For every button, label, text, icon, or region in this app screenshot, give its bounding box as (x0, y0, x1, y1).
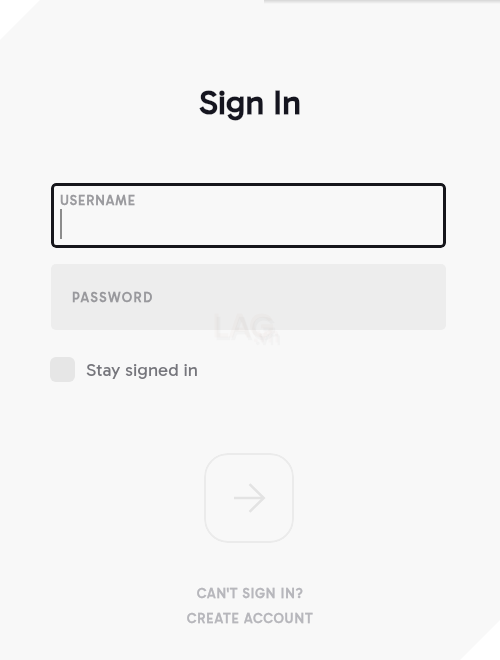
button[interactable]: Stay signed in (50, 353, 198, 386)
staticText: PASSWORD (72, 290, 154, 306)
button[interactable]: CAN'T SIGN IN? (197, 586, 304, 602)
button[interactable]: PASSWORD (51, 264, 446, 330)
button[interactable]: USERNAME (51, 183, 446, 248)
staticText: LAG (212, 306, 274, 346)
staticText: CAN'T SIGN IN? (197, 586, 304, 602)
staticText: Sign In (199, 82, 301, 123)
staticText: USERNAME (60, 193, 136, 209)
staticText: LAG (214, 309, 276, 349)
staticText: .vn (253, 322, 280, 347)
staticText: CREATE ACCOUNT (187, 611, 314, 627)
staticText: .vn (255, 325, 282, 350)
staticText: Stay signed in (86, 359, 198, 381)
button[interactable]: CREATE ACCOUNT (187, 611, 314, 627)
button[interactable]: Sign in (204, 453, 294, 543)
